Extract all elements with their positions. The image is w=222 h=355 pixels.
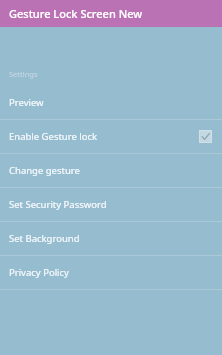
button[interactable]: Set Background (0, 222, 222, 255)
staticText: Gesture Lock Screen New (9, 6, 143, 21)
staticText: Change gesture (9, 164, 80, 177)
staticText: Privacy Policy (9, 266, 69, 279)
button[interactable]: Enable Gesture lock (0, 120, 222, 153)
button[interactable]: Privacy Policy (0, 256, 222, 289)
staticText: Settings (9, 69, 38, 79)
button[interactable]: Set Security Password (0, 188, 222, 221)
button[interactable]: Change gesture (0, 154, 222, 187)
staticText: Preview (9, 96, 44, 109)
button[interactable]: Preview (0, 86, 222, 119)
other: Enable Gesture lock checkbox (199, 130, 212, 143)
staticText: Set Background (9, 232, 80, 245)
staticText: Set Security Password (9, 198, 107, 211)
staticText: Enable Gesture lock (9, 130, 98, 143)
